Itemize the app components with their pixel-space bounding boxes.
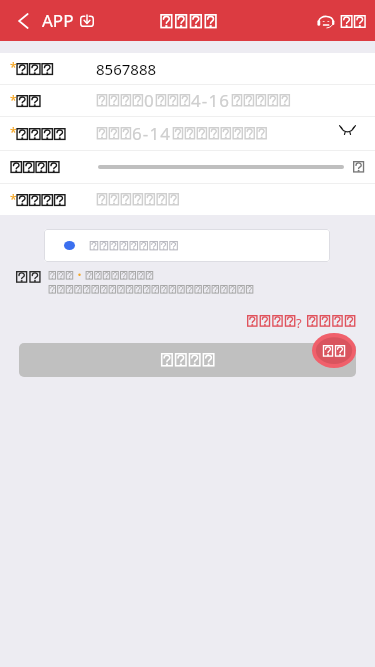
staticText: *: [10, 92, 17, 108]
staticText: 4-16: [191, 89, 231, 112]
staticText: ?: [296, 314, 302, 328]
button[interactable]: [19, 343, 356, 377]
button[interactable]: Submit: [312, 333, 356, 368]
button[interactable]: [44, 229, 330, 262]
other: Download: [80, 15, 94, 27]
button[interactable]: Customer service: [317, 14, 366, 28]
staticText: *: [10, 191, 17, 207]
staticText: 6-14: [132, 122, 172, 145]
button[interactable]: ?: [246, 314, 356, 328]
staticText: *: [10, 124, 17, 140]
other: Back: [18, 14, 29, 28]
button[interactable]: Show password: [338, 122, 357, 135]
staticText: *: [10, 59, 17, 75]
staticText: 8567888: [96, 59, 157, 79]
button[interactable]: Back: [18, 9, 94, 32]
staticText: APP: [42, 9, 74, 32]
staticText: 0: [144, 89, 155, 112]
other: Customer service: [317, 14, 335, 28]
